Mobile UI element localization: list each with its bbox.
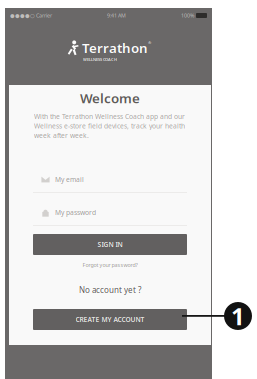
staticText: My password [55,208,96,217]
staticText: With the Terrathon Wellness Coach app an… [34,112,185,121]
staticText: ●●●●○ Carrier [10,12,52,19]
staticText: ® [148,40,151,45]
staticText: Terrathon [82,39,148,57]
staticText: SIGN IN [97,240,122,249]
staticText: week after week. [34,131,89,140]
staticText: 100% [181,12,194,19]
staticText: Welcome [80,89,140,107]
staticText: 9:41 AM [107,12,126,19]
staticText: CREATE MY ACCOUNT [75,315,144,324]
button[interactable]: SIGN IN [33,234,187,255]
staticText: My email [55,175,84,184]
staticText: Forgot your password? [82,261,137,269]
staticText: No account yet ? [79,285,141,295]
button[interactable]: CREATE MY ACCOUNT [33,309,187,330]
button[interactable]: Forgot your password? [33,259,187,271]
staticText: Wellness e-store field devices, track yo… [34,121,185,130]
staticText: WELLNESS COACH [83,57,117,62]
staticText: 1 [231,300,245,332]
